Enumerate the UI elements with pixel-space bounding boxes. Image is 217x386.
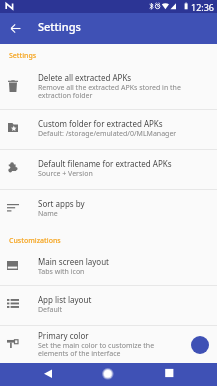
staticText: Delete all extracted APKs — [38, 72, 132, 83]
staticText: Remove all the extracted APKs stored in … — [38, 83, 185, 100]
button[interactable]: Home — [93, 363, 123, 386]
button[interactable]: Default filename for extracted APKs — [0, 150, 217, 189]
staticText: 12:36 — [191, 1, 215, 13]
staticText: Settings — [38, 19, 81, 34]
button[interactable]: Sort apps by — [0, 190, 217, 229]
staticText: App list layout — [38, 294, 92, 305]
staticText: Settings — [9, 51, 37, 61]
staticText: Sort apps by — [38, 198, 85, 209]
staticText: Custom folder for extracted APKs — [38, 118, 163, 129]
button[interactable]: Back — [0, 13, 31, 44]
button[interactable]: Primary color — [0, 326, 217, 363]
staticText: Set the main color to customize the elem… — [38, 341, 185, 358]
button[interactable]: Back — [33, 363, 63, 386]
button[interactable]: Custom folder for extracted APKs — [0, 110, 217, 149]
button[interactable]: Main screen layout — [0, 249, 217, 285]
staticText: Source + Version — [38, 169, 93, 179]
staticText: Customizations — [9, 236, 61, 246]
staticText: Default — [38, 305, 63, 315]
staticText: Default: /storage/emulated/0/MLManager — [38, 129, 177, 139]
staticText: Main screen layout — [38, 256, 109, 267]
button[interactable]: App list layout — [0, 286, 217, 325]
staticText: Tabs with icon — [38, 267, 85, 277]
staticText: Default filename for extracted APKs — [38, 158, 172, 169]
button[interactable]: Delete all extracted APKs — [0, 65, 217, 109]
button[interactable]: Primary color swatch — [191, 336, 209, 354]
button[interactable]: Recents — [154, 363, 184, 386]
staticText: Primary color — [38, 330, 89, 341]
staticText: Name — [38, 209, 58, 219]
